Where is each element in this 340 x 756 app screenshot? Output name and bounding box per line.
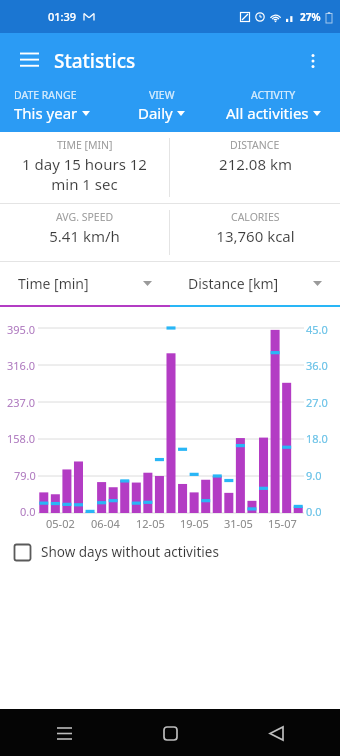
- staticText: Daily: [138, 103, 173, 123]
- button[interactable]: Show days without activities: [0, 532, 340, 572]
- button[interactable]: ACTIVITY: [207, 88, 340, 123]
- staticText: Show days without activities: [41, 543, 219, 561]
- staticText: 212.08 km: [219, 154, 292, 174]
- staticText: 36.0: [306, 358, 328, 373]
- staticText: DISTANCE: [230, 138, 280, 152]
- button[interactable]: Home: [150, 713, 190, 753]
- staticText: Statistics: [54, 48, 136, 74]
- staticText: 31-05: [224, 516, 253, 531]
- staticText: 05-02: [46, 516, 75, 531]
- button[interactable]: More options: [294, 42, 332, 80]
- staticText: 01:39: [48, 9, 77, 24]
- staticText: 158.0: [7, 431, 36, 446]
- staticText: 18.0: [306, 431, 328, 446]
- staticText: 13,760 kcal: [216, 226, 295, 246]
- button[interactable]: DISTANCE: [170, 132, 340, 203]
- staticText: 15-07: [268, 516, 297, 531]
- staticText: 237.0: [7, 395, 36, 410]
- staticText: 06-04: [91, 516, 120, 531]
- staticText: 9.0: [306, 468, 322, 483]
- button[interactable]: AVG. SPEED: [0, 204, 169, 261]
- staticText: 5.41 km/h: [49, 226, 120, 246]
- button[interactable]: Back: [256, 713, 296, 753]
- staticText: 395.0: [7, 322, 36, 337]
- staticText: TIME [MIN]: [57, 138, 113, 152]
- staticText: Time [min]: [18, 274, 89, 293]
- staticText: This year: [14, 103, 78, 123]
- button[interactable]: VIEW: [116, 88, 207, 123]
- staticText: DATE RANGE: [14, 88, 77, 102]
- button[interactable]: Recent apps: [44, 713, 84, 753]
- staticText: AVG. SPEED: [56, 210, 114, 224]
- staticText: Distance [km]: [188, 274, 279, 293]
- staticText: CALORIES: [231, 210, 280, 224]
- staticText: 27.0: [306, 395, 328, 410]
- staticText: 27%: [300, 10, 321, 24]
- staticText: 316.0: [7, 358, 36, 373]
- staticText: All activities: [226, 103, 309, 123]
- staticText: 12-05: [136, 516, 165, 531]
- button[interactable]: DATE RANGE: [14, 88, 116, 123]
- button[interactable]: Distance [km]: [170, 262, 340, 307]
- button[interactable]: CALORIES: [170, 204, 340, 261]
- staticText: 79.0: [14, 468, 36, 483]
- staticText: ACTIVITY: [251, 88, 296, 102]
- staticText: 0.0: [20, 504, 36, 519]
- button[interactable]: TIME [MIN]: [0, 132, 169, 203]
- staticText: 0.0: [306, 504, 322, 519]
- staticText: 1 day 15 hours 12 min 1 sec: [22, 154, 147, 194]
- staticText: VIEW: [149, 88, 175, 102]
- button[interactable]: Time [min]: [0, 262, 170, 307]
- button[interactable]: Open navigation menu: [10, 42, 48, 80]
- staticText: 45.0: [306, 322, 328, 337]
- staticText: 19-05: [180, 516, 209, 531]
